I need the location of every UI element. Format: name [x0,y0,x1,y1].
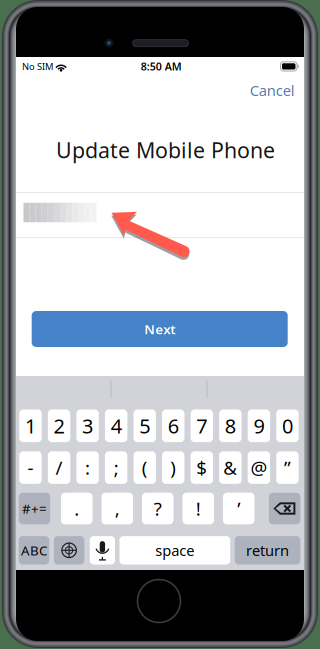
button[interactable]: ? [142,493,173,524]
staticText: ? [154,496,162,521]
staticText: ’ [237,496,240,521]
button[interactable]: 8 [219,409,242,442]
staticText: return [246,541,289,560]
staticText: ( [142,455,148,480]
staticText: No SIM [22,60,53,73]
staticText: 8:50 AM [141,59,182,73]
button[interactable]: ( [133,451,156,484]
staticText: - [27,455,33,480]
staticText: ” [284,455,291,480]
staticText: 5 [139,412,150,439]
staticText: 2 [53,412,64,439]
button[interactable]: ’ [223,493,254,524]
staticText: ; [114,455,119,480]
button[interactable]: ) [162,451,184,484]
staticText: / [55,455,62,480]
staticText: @ [250,455,267,480]
staticText: $ [196,455,207,480]
button[interactable]: 0 [276,409,299,442]
staticText: space [155,541,194,560]
staticText: 4 [111,412,122,439]
staticText: Next [144,320,175,338]
staticText: 9 [253,412,264,439]
button[interactable]: . [61,493,92,524]
button[interactable]: ABC [19,536,49,564]
staticText: 8 [225,412,236,439]
staticText: 0 [282,412,293,439]
button[interactable]: Dictation [90,536,115,564]
staticText: 6 [168,412,179,439]
button[interactable]: & [219,451,242,484]
button[interactable]: 2 [48,409,70,442]
button[interactable]: #+= [19,493,50,524]
staticText: 1 [25,412,36,439]
button[interactable]: Next [32,311,288,347]
staticText: ! [196,496,201,521]
button[interactable]: ! [182,493,214,524]
button[interactable]: - [19,451,42,484]
button[interactable]: Cancel [231,77,295,103]
button[interactable]: ; [105,451,127,484]
button[interactable]: / [48,451,70,484]
staticText: : [85,455,90,480]
staticText: #+= [22,500,47,517]
button[interactable]: @ [248,451,270,484]
button[interactable]: space [119,536,230,564]
button[interactable]: 3 [76,409,99,442]
button[interactable]: 1 [19,409,42,442]
button[interactable]: 5 [133,409,156,442]
button[interactable]: : [76,451,99,484]
staticText: & [223,455,237,480]
staticText: Cancel [250,81,295,100]
button[interactable]: 7 [191,409,213,442]
button[interactable]: 4 [105,409,127,442]
staticText: Update Mobile Phone [56,136,275,164]
button[interactable]: $ [191,451,213,484]
button[interactable]: ” [276,451,299,484]
button[interactable]: Next keyboard [54,536,84,564]
button[interactable]: Delete [269,493,300,524]
staticText: ) [170,455,176,480]
staticText: , [115,496,120,521]
button[interactable]: , [101,493,133,524]
button[interactable]: return [235,536,300,564]
button[interactable]: 9 [248,409,270,442]
staticText: . [74,496,79,521]
button[interactable]: 6 [162,409,184,442]
staticText: ABC [21,541,47,559]
staticText: 3 [82,412,93,439]
staticText: 7 [196,412,207,439]
